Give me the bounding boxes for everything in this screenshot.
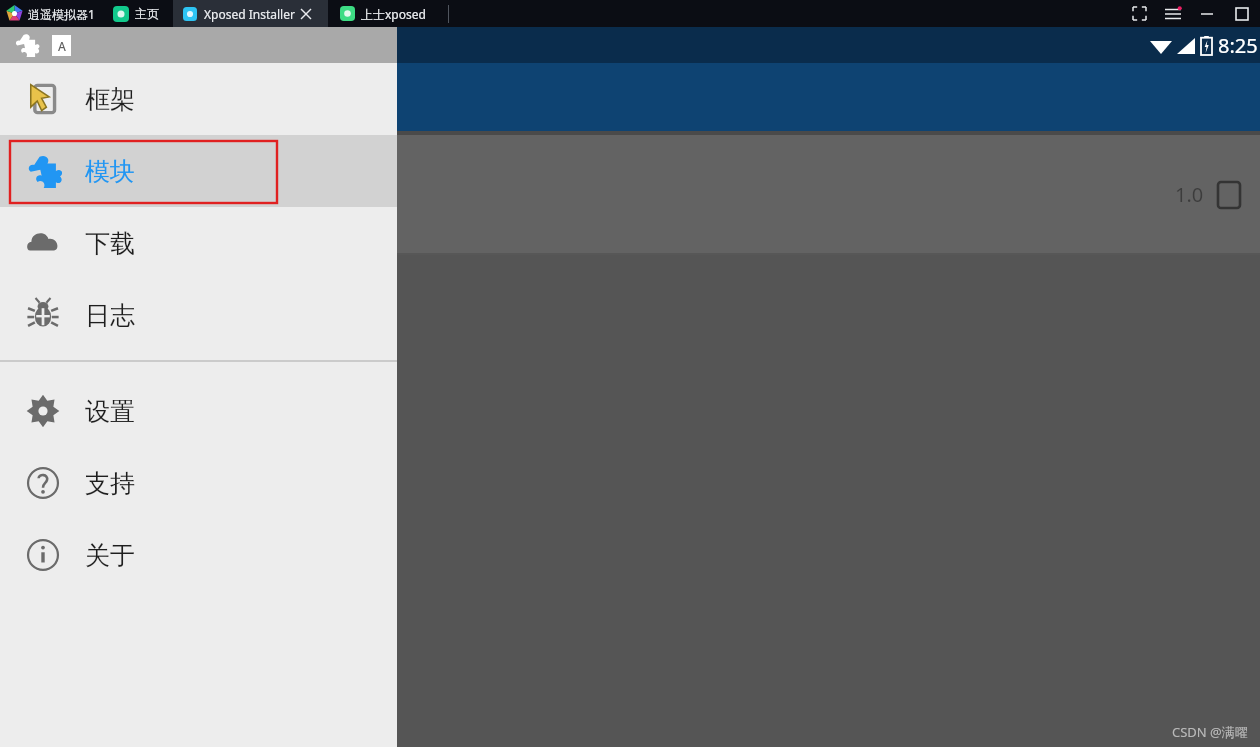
button[interactable]: 日志 (0, 279, 397, 351)
staticText: CSDN @满曜 (1172, 723, 1248, 741)
staticText: 关于 (85, 540, 135, 571)
button[interactable]: Menu (1156, 0, 1190, 27)
staticText: 上士xposed (361, 6, 426, 22)
staticText: 主页 (135, 6, 159, 21)
button[interactable]: 主页 (105, 0, 173, 27)
staticText: 下载 (85, 228, 135, 259)
button[interactable]: 设置 (0, 375, 397, 447)
button[interactable]: 框架 (0, 63, 397, 135)
button[interactable]: Close tab (297, 5, 315, 23)
button[interactable]: Maximize (1224, 0, 1260, 27)
staticText: 模块 (85, 156, 135, 187)
button[interactable]: 上士xposed (328, 0, 440, 27)
staticText: 日志 (85, 300, 135, 331)
button[interactable]: 1.0 (0, 135, 1260, 253)
staticText: 8:25 (1218, 32, 1258, 59)
staticText: 逍遥模拟器1 (28, 6, 95, 22)
button[interactable]: 下载 (0, 207, 397, 279)
button[interactable]: 逍遥模拟器1 (0, 0, 105, 27)
button[interactable]: 支持 (0, 447, 397, 519)
staticText: Xposed Installer (204, 6, 295, 22)
staticText: A (58, 38, 66, 54)
button[interactable]: Xposed Installer (173, 0, 328, 27)
staticText: 支持 (85, 468, 135, 499)
staticText: 1.0 (1175, 181, 1204, 208)
staticText: 设置 (85, 396, 135, 427)
button[interactable]: 模块 (0, 135, 397, 207)
staticText: 框架 (85, 84, 135, 115)
button[interactable]: Minimize (1190, 0, 1224, 27)
button[interactable]: 关于 (0, 519, 397, 591)
button[interactable]: Fullscreen (1122, 0, 1156, 27)
